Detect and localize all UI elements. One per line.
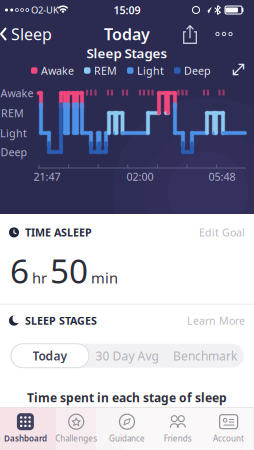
button[interactable]: Edit Goal: [199, 225, 245, 239]
button[interactable]: Benchmark: [166, 344, 244, 368]
staticText: Edit Goal: [199, 225, 245, 239]
staticText: Awake: [41, 63, 74, 78]
staticText: 21:47: [33, 169, 60, 184]
staticText: Today: [104, 23, 150, 45]
staticText: Learn More: [187, 314, 245, 328]
staticText: Friends: [164, 433, 192, 444]
button[interactable]: Expand chart: [232, 63, 245, 76]
button[interactable]: More: [216, 32, 232, 36]
button[interactable]: Today: [11, 344, 89, 368]
staticText: 02:00: [126, 169, 153, 184]
button[interactable]: Account: [203, 407, 254, 450]
staticText: Time spent in each stage of sleep: [27, 390, 227, 406]
staticText: 05:48: [208, 169, 235, 184]
button[interactable]: Sleep: [0, 23, 52, 45]
staticText: Deep: [0, 145, 27, 159]
staticText: Sleep: [11, 23, 52, 45]
button[interactable]: Challenges: [51, 407, 102, 450]
staticText: SLEEP STAGES: [25, 314, 97, 328]
staticText: min: [91, 268, 118, 288]
button[interactable]: Learn More: [187, 314, 245, 328]
button[interactable]: 30 Day Avg: [88, 344, 166, 368]
staticText: 6: [10, 248, 29, 293]
staticText: Dashboard: [4, 433, 47, 444]
staticText: Light: [0, 126, 27, 140]
button[interactable]: Share: [183, 25, 197, 44]
button[interactable]: Friends: [152, 407, 203, 450]
staticText: REM: [1, 106, 24, 120]
button[interactable]: Dashboard: [0, 407, 51, 450]
staticText: 30 Day Avg: [95, 348, 158, 364]
staticText: hr: [32, 268, 47, 288]
button[interactable]: Guidance: [102, 407, 152, 450]
staticText: Challenges: [55, 433, 97, 444]
staticText: Today: [32, 348, 67, 364]
staticText: Benchmark: [173, 348, 237, 364]
staticText: Deep: [184, 63, 211, 78]
staticText: TIME ASLEEP: [25, 225, 92, 239]
staticText: REM: [94, 63, 117, 78]
staticText: Sleep Stages: [86, 44, 167, 62]
staticText: Light: [137, 63, 164, 78]
staticText: O2-UK: [31, 4, 59, 16]
staticText: Account: [213, 433, 244, 444]
staticText: 50: [50, 248, 88, 293]
staticText: Guidance: [109, 433, 145, 444]
staticText: 15:09: [113, 3, 140, 17]
staticText: Awake: [0, 86, 33, 100]
